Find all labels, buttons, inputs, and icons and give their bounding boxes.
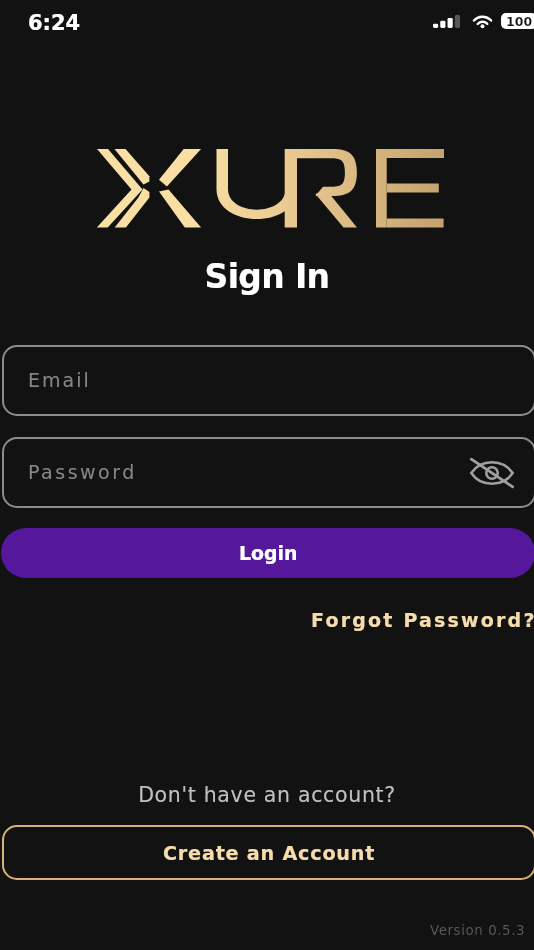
staticText: 100 bbox=[506, 14, 533, 29]
button[interactable]: Create an Account bbox=[2, 825, 534, 880]
staticText: 6:24 bbox=[28, 11, 81, 35]
staticText: Create an Account bbox=[163, 842, 376, 864]
button[interactable]: Password bbox=[2, 437, 534, 508]
staticText: Login bbox=[239, 542, 298, 564]
button[interactable]: Login bbox=[1, 528, 534, 578]
button[interactable]: Show password bbox=[464, 445, 520, 501]
staticText: Email bbox=[28, 369, 91, 391]
staticText: Sign In bbox=[0, 257, 534, 295]
staticText: Version 0.5.3 bbox=[430, 923, 526, 939]
button[interactable]: Email bbox=[2, 345, 534, 416]
staticText: Password bbox=[28, 461, 137, 483]
staticText: Don't have an account? bbox=[0, 783, 534, 807]
button[interactable]: Forgot Password? bbox=[311, 609, 534, 631]
staticText: Forgot Password? bbox=[311, 609, 534, 631]
